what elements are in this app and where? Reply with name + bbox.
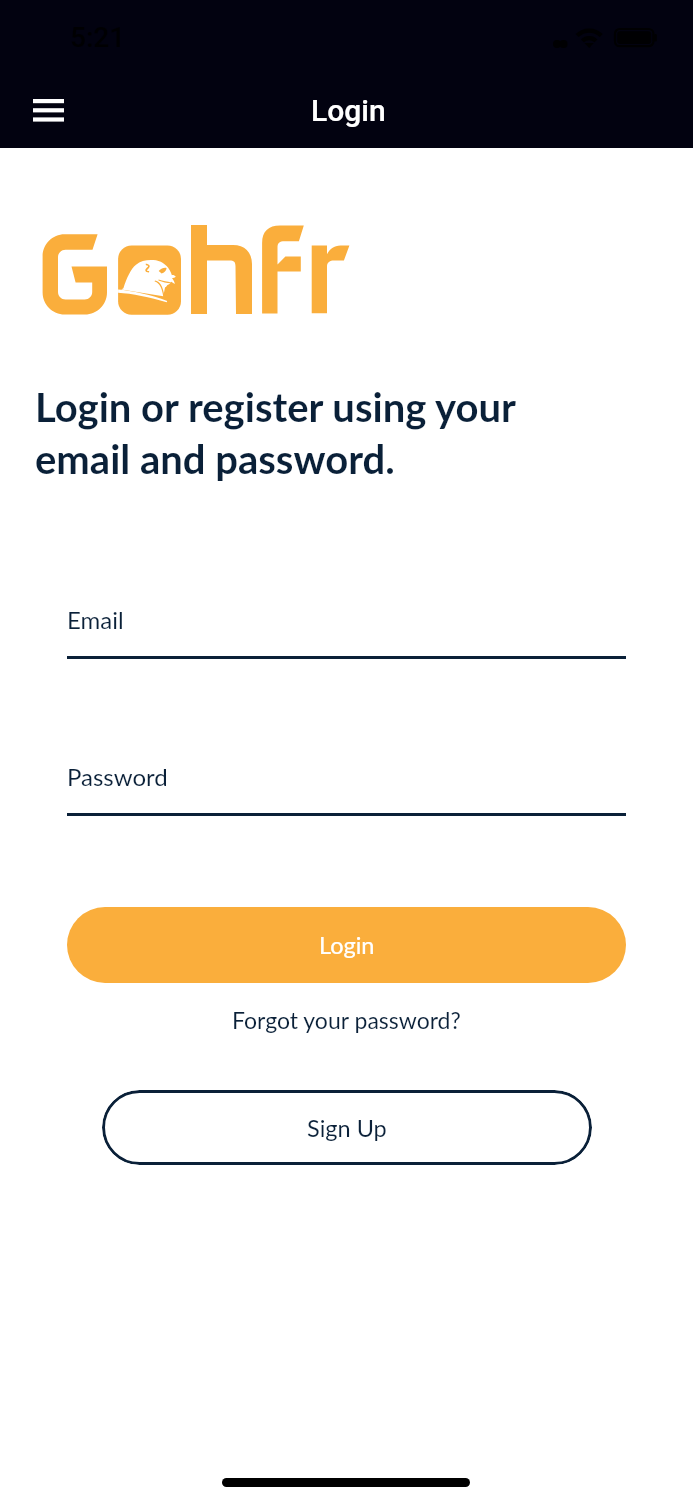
button[interactable]: Password [67,762,626,816]
staticText: 5:21 [70,21,126,54]
staticText: Email [67,605,124,634]
button[interactable]: Login [67,907,626,983]
button[interactable]: Open navigation menu [18,82,79,138]
button[interactable]: Forgot your password? [170,994,523,1046]
staticText: Login [311,93,386,128]
staticText: Login [319,931,375,959]
button[interactable]: Email [67,605,626,659]
staticText: Sign Up [307,1114,387,1142]
staticText: Forgot your password? [232,1006,461,1034]
button[interactable]: Sign Up [102,1090,592,1165]
staticText: Password [67,762,168,791]
staticText: Login or register using your email and p… [35,383,516,482]
